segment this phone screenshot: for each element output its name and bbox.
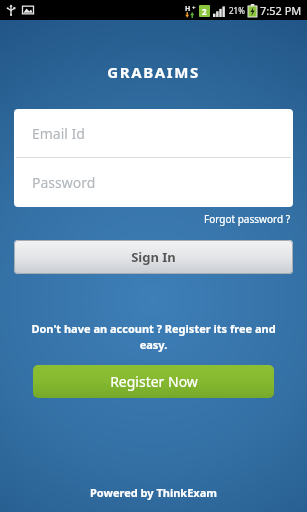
staticText: Forgot password ? xyxy=(204,212,290,226)
button[interactable]: Register Now xyxy=(33,365,274,398)
staticText: GRABAIMS xyxy=(0,62,307,82)
staticText: Register Now xyxy=(110,372,198,391)
staticText: 7:52 PM xyxy=(260,3,302,18)
button[interactable]: Email Id xyxy=(14,109,293,157)
staticText: Powered by ThinkExam xyxy=(0,485,307,500)
button[interactable]: Forgot password ? xyxy=(201,210,293,228)
staticText: H xyxy=(185,4,191,14)
staticText: Don't have an account ? Register its fre… xyxy=(20,321,287,352)
staticText: Sign In xyxy=(131,248,176,266)
staticText: + xyxy=(192,4,196,12)
staticText: Password xyxy=(32,173,96,192)
button[interactable]: Password xyxy=(14,158,293,207)
staticText: Email Id xyxy=(32,124,85,143)
staticText: 2 xyxy=(202,6,207,17)
staticText: 21% xyxy=(229,5,245,16)
button[interactable]: Sign In xyxy=(14,240,293,274)
